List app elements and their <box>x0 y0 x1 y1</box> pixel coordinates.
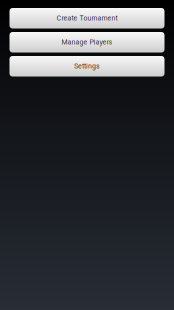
staticText: Settings <box>74 62 100 70</box>
button[interactable]: Settings <box>9 56 164 76</box>
button[interactable]: Create Tournament <box>9 8 164 28</box>
staticText: Create Tournament <box>56 14 117 22</box>
button[interactable]: Manage Players <box>9 32 164 52</box>
staticText: Manage Players <box>61 38 112 46</box>
